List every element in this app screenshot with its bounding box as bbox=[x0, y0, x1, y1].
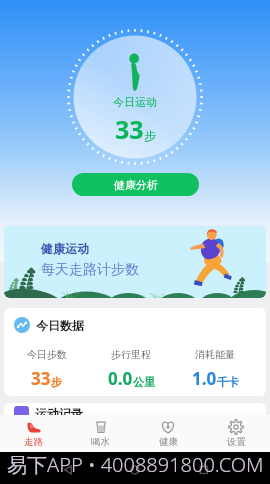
staticText: 步行里程 bbox=[111, 348, 151, 361]
staticText: 千卡 bbox=[217, 375, 239, 389]
staticText: 运动记录 bbox=[35, 406, 83, 421]
button[interactable]: 健康 bbox=[134, 415, 202, 452]
button[interactable]: 运动记录 bbox=[4, 403, 266, 443]
staticText: 0.0 bbox=[108, 367, 133, 390]
staticText: 喝水 bbox=[91, 436, 110, 448]
button[interactable]: 设置 bbox=[202, 415, 270, 452]
staticText: 步 bbox=[51, 375, 62, 389]
staticText: 33 bbox=[115, 112, 144, 146]
staticText: 消耗能量 bbox=[195, 348, 235, 361]
staticText: 健康分析 bbox=[114, 178, 158, 192]
button[interactable]: 喝水 bbox=[67, 415, 134, 452]
staticText: 今日运动 bbox=[113, 95, 157, 109]
staticText: 健康 bbox=[159, 436, 178, 448]
staticText: 健康运动 bbox=[41, 241, 89, 256]
staticText: 公里 bbox=[133, 375, 155, 389]
staticText: 易下APP • 4008891800.COM bbox=[7, 451, 264, 478]
button[interactable]: 健康运动 bbox=[4, 226, 266, 298]
staticText: 设置 bbox=[227, 436, 246, 448]
staticText: 今日数据 bbox=[36, 318, 84, 333]
button[interactable]: 走路 bbox=[0, 415, 67, 452]
staticText: 1.0 bbox=[192, 367, 217, 390]
staticText: 每天走路计步数 bbox=[41, 261, 139, 279]
staticText: 33 bbox=[31, 367, 51, 390]
staticText: 走路 bbox=[24, 436, 43, 448]
button[interactable]: 健康分析 bbox=[72, 173, 199, 196]
staticText: 今日步数 bbox=[27, 348, 67, 361]
staticText: 步 bbox=[144, 128, 156, 143]
